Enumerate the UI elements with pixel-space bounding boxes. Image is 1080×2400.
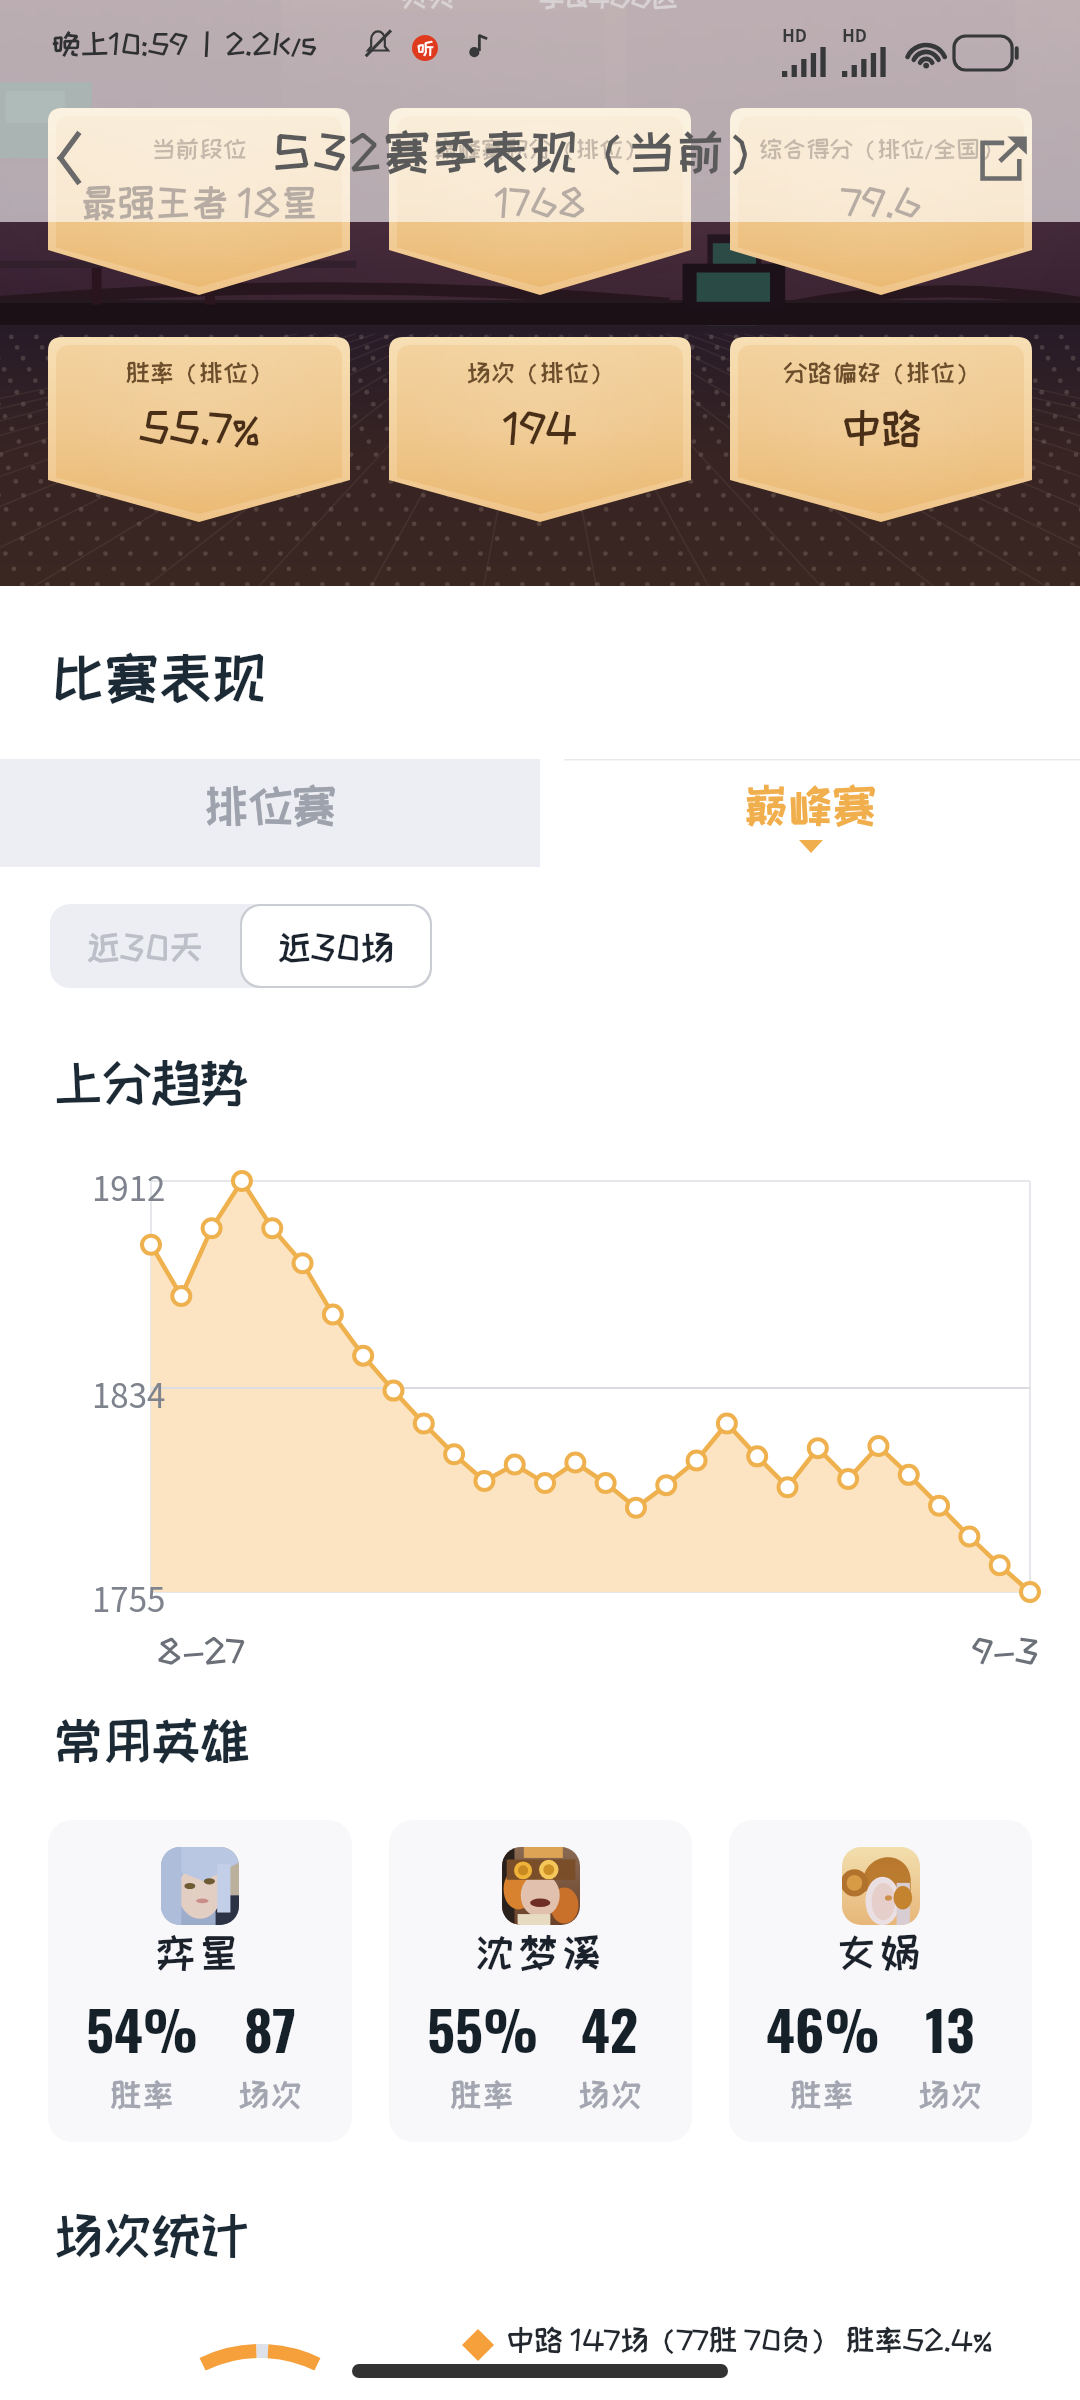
- staticText: 最强王者 18星: [81, 182, 318, 222]
- staticText: 胜率: [110, 2077, 175, 2111]
- staticText: 听: [417, 39, 434, 57]
- staticText: 近30场: [277, 928, 395, 965]
- button[interactable]: 弈星: [48, 1820, 352, 2142]
- button[interactable]: Back: [30, 118, 110, 198]
- staticText: S32赛季表现（当前）: [273, 126, 776, 176]
- staticText: 巅峰赛: [744, 781, 877, 829]
- button[interactable]: 排位赛: [0, 759, 540, 867]
- staticText: 55%: [427, 1987, 539, 2069]
- staticText: 1834: [92, 1370, 166, 1418]
- button[interactable]: 近30场: [242, 906, 430, 986]
- staticText: 中路: [841, 405, 922, 449]
- staticText: 常用英雄: [54, 1713, 250, 1766]
- staticText: 场次（排位）: [466, 359, 614, 385]
- staticText: 46%: [766, 1987, 880, 2069]
- staticText: 沈梦溪: [475, 1931, 606, 1973]
- staticText: 场次统计: [54, 2208, 250, 2261]
- staticText: 胜率（排位）: [125, 359, 273, 385]
- staticText: 13: [925, 1987, 975, 2069]
- staticText: 场次: [578, 2077, 643, 2111]
- staticText: 比赛表现: [52, 648, 266, 706]
- staticText: 42: [581, 1987, 639, 2069]
- button[interactable]: 巅峰赛: [540, 759, 1080, 867]
- staticText: 贝贝 手Q466区: [400, 0, 679, 12]
- staticText: 排位赛: [204, 781, 337, 829]
- staticText: 54%: [86, 1987, 199, 2069]
- staticText: 87: [244, 1987, 297, 2069]
- staticText: 当前段位: [152, 136, 247, 161]
- staticText: 综合得分（排位/全国）: [759, 136, 1004, 161]
- staticText: 女娲: [837, 1931, 925, 1973]
- button[interactable]: 近30天: [50, 904, 240, 988]
- staticText: 55.7%: [139, 405, 260, 449]
- button[interactable]: 沈梦溪: [389, 1820, 692, 2142]
- staticText: 场次: [238, 2077, 303, 2111]
- staticText: HD: [842, 22, 868, 47]
- staticText: 9-3: [972, 1633, 1039, 1668]
- staticText: HD: [782, 22, 808, 47]
- staticText: 194: [503, 405, 577, 449]
- staticText: 胜率: [450, 2077, 515, 2111]
- staticText: 近30天: [86, 928, 204, 965]
- staticText: 巅峰赛积分（排位）: [434, 136, 647, 161]
- staticText: 1755: [92, 1574, 166, 1622]
- button[interactable]: Share: [962, 118, 1042, 198]
- staticText: 场次: [918, 2077, 983, 2111]
- staticText: 79.6: [841, 182, 922, 222]
- staticText: 8-27: [157, 1633, 245, 1668]
- staticText: 上分趋势: [54, 1055, 250, 1108]
- button[interactable]: 女娲: [729, 1820, 1032, 2142]
- staticText: 1768: [495, 182, 586, 222]
- staticText: 晚上10:59 | 2.2K/s: [52, 28, 318, 59]
- staticText: 弈星: [156, 1931, 244, 1973]
- staticText: 胜率: [790, 2077, 855, 2111]
- staticText: 中路 147场（77胜 70负） 胜率52.4%: [506, 2324, 993, 2355]
- staticText: 分路偏好（排位）: [783, 359, 980, 385]
- staticText: 1912: [92, 1163, 166, 1211]
